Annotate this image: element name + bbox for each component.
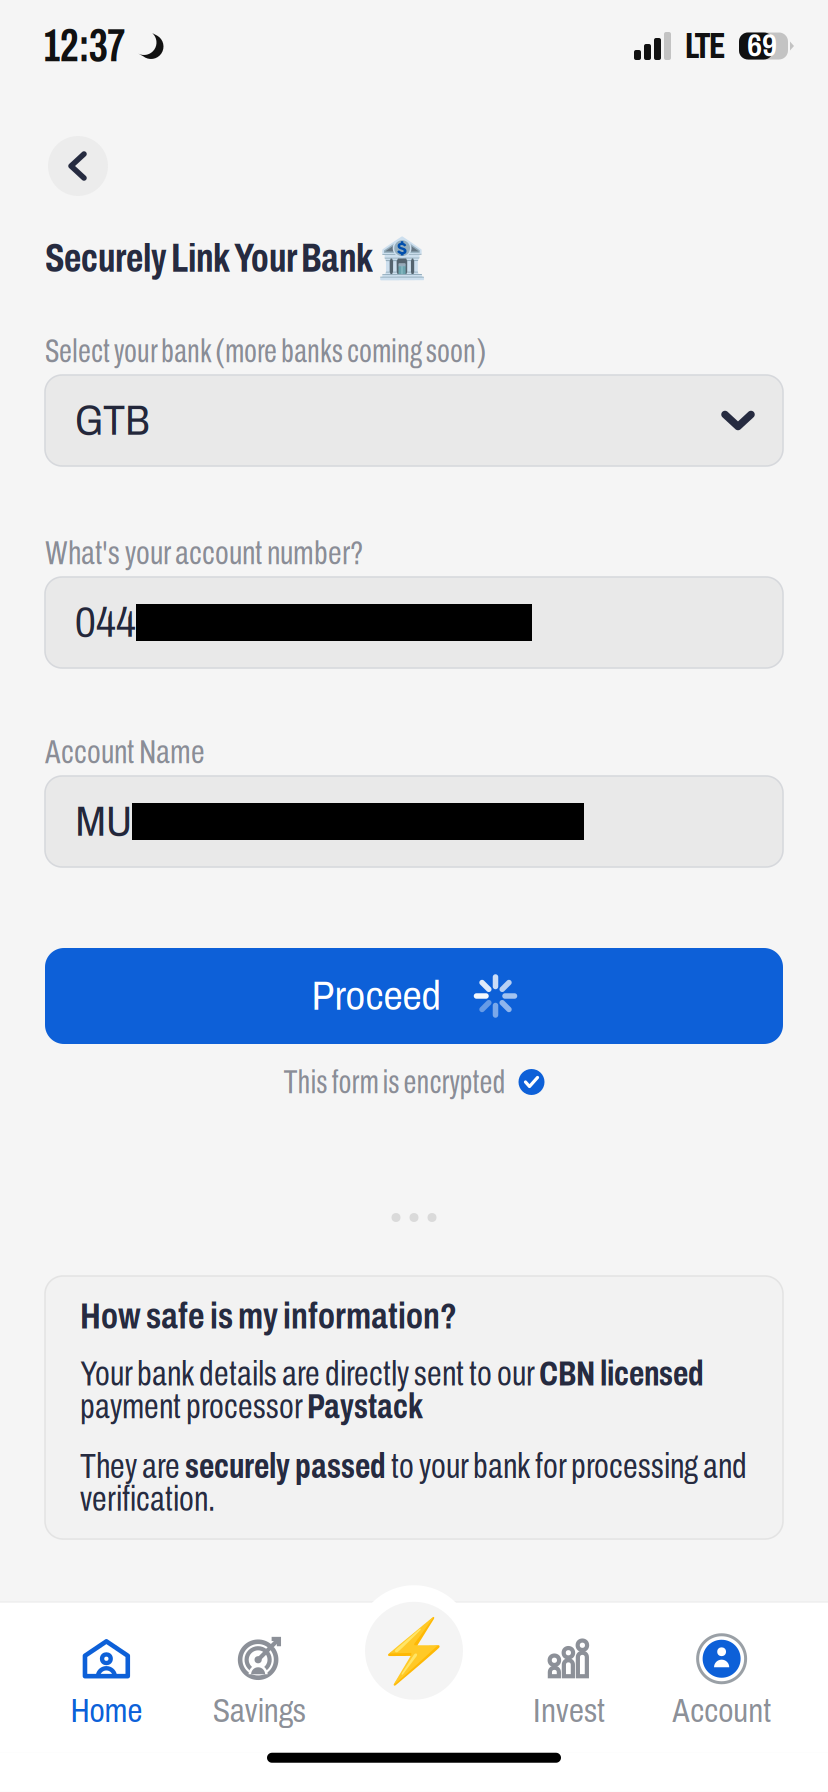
staticText: Securely Link Your Bank 🏦: [45, 235, 427, 281]
staticText: Select your bank (more banks coming soon…: [45, 333, 486, 369]
button[interactable]: MU: [45, 776, 783, 867]
staticText: What's your account number?: [45, 535, 363, 571]
staticText: Invest: [533, 1693, 605, 1729]
staticText: 69: [747, 29, 777, 63]
staticText: Account Name: [45, 734, 205, 770]
button[interactable]: Savings: [183, 1603, 336, 1753]
button[interactable]: Home: [30, 1603, 183, 1753]
staticText: GTB: [75, 397, 150, 444]
button[interactable]: Account: [645, 1603, 798, 1753]
button[interactable]: Quick action: [355, 1585, 473, 1703]
staticText: 12:37: [44, 21, 125, 71]
staticText: They are securely passed to your bank fo…: [80, 1448, 747, 1518]
staticText: ⚡: [376, 1615, 452, 1687]
button[interactable]: Back: [48, 136, 108, 196]
staticText: MU: [75, 798, 132, 845]
staticText: Your bank details are directly sent to o…: [80, 1355, 704, 1426]
button[interactable]: 044: [45, 577, 783, 668]
staticText: Home: [70, 1693, 142, 1729]
staticText: This form is encrypted: [283, 1064, 505, 1100]
button[interactable]: Proceed: [45, 948, 783, 1044]
button[interactable]: GTB: [45, 375, 783, 466]
staticText: Savings: [213, 1693, 306, 1729]
staticText: Account: [672, 1693, 771, 1729]
staticText: LTE: [685, 26, 725, 66]
staticText: How safe is my information?: [80, 1297, 457, 1336]
button[interactable]: Invest: [492, 1603, 645, 1753]
staticText: 044: [75, 599, 136, 646]
staticText: Proceed: [311, 973, 440, 1018]
